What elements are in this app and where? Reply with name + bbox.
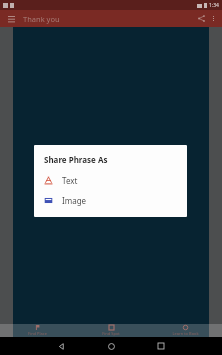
button[interactable]: Home [86,337,136,355]
staticText: Image [62,195,87,206]
button[interactable]: Navigation menu [5,13,17,25]
button[interactable]: Text [44,173,179,188]
button[interactable]: Recent apps [136,337,186,355]
button[interactable]: Share [195,12,208,25]
staticText: Find Place [28,331,47,336]
staticText: Thank you [23,14,60,24]
staticText: Text [62,175,78,186]
button[interactable]: More options [208,13,219,24]
button[interactable]: Learn to Book [148,324,222,337]
button[interactable]: Find Place [0,324,74,337]
staticText: 1:34 [209,2,219,9]
staticText: Find Spot [102,331,120,336]
button[interactable]: Image [44,193,179,208]
button[interactable]: Back [36,337,86,355]
staticText: Learn to Book [172,331,199,336]
staticText: Share Phrase As [44,154,108,165]
button[interactable]: Find Spot [74,324,148,337]
